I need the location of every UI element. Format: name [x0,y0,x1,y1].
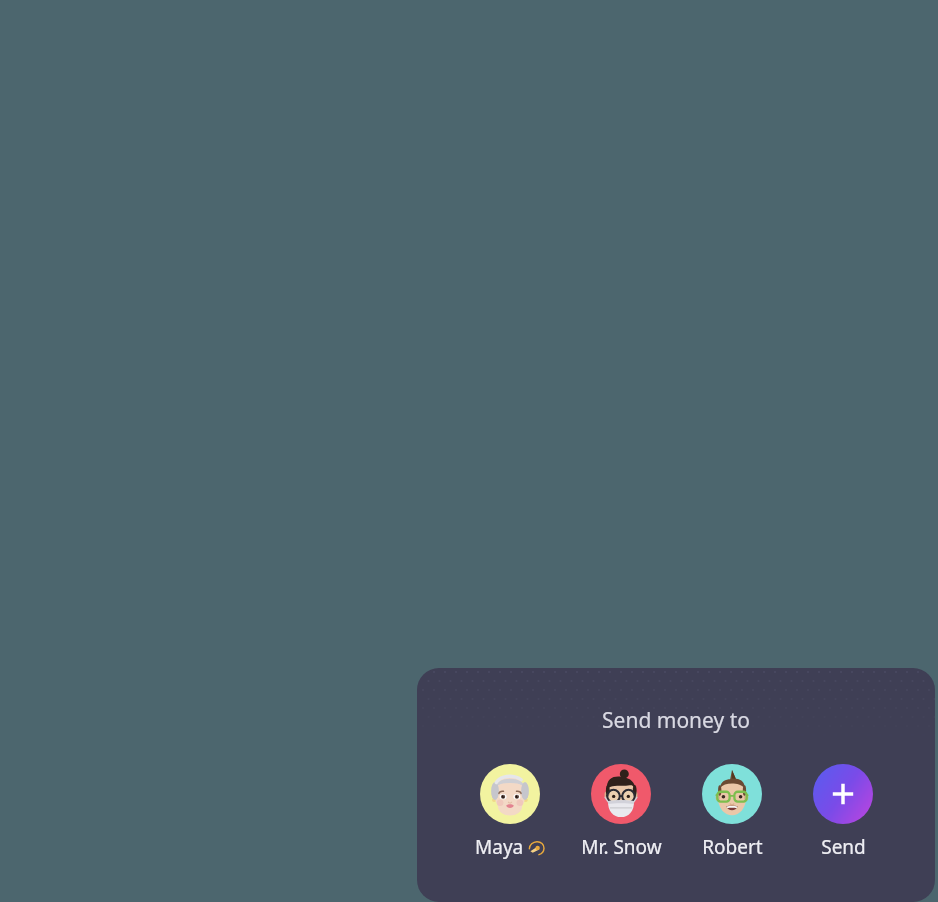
button[interactable]: Robert [687,764,777,860]
button[interactable]: Maya [465,764,555,860]
staticText: Mr. Snow [581,834,662,860]
staticText: Send money to [602,706,750,735]
staticText: Send [821,834,866,860]
staticText: Robert [702,834,763,860]
button[interactable]: Mr. Snow [576,764,666,860]
staticText: Maya [475,834,524,860]
button[interactable]: Send money to a new contact [798,764,888,860]
